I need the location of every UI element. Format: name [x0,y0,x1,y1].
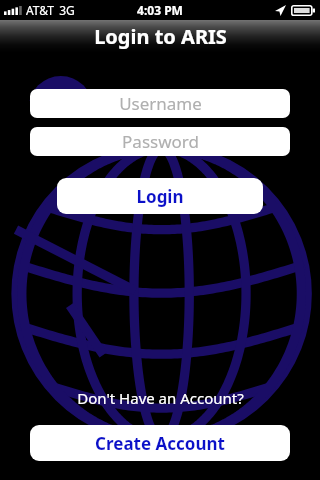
staticText: Don't Have an Account? [77,388,244,408]
staticText: Password [122,130,199,153]
button[interactable]: Password [30,127,290,156]
staticText: 4:03 PM [137,2,183,18]
staticText: Login [136,185,184,208]
staticText: 3G [59,2,75,18]
button[interactable]: Username [30,89,290,118]
staticText: AT&T [26,2,54,18]
button[interactable]: Login [57,178,263,214]
other: Location [275,5,286,16]
staticText: Create Account [95,432,225,455]
button[interactable]: Create Account [30,425,290,461]
staticText: Username [119,92,202,115]
staticText: Login to ARIS [94,23,227,50]
